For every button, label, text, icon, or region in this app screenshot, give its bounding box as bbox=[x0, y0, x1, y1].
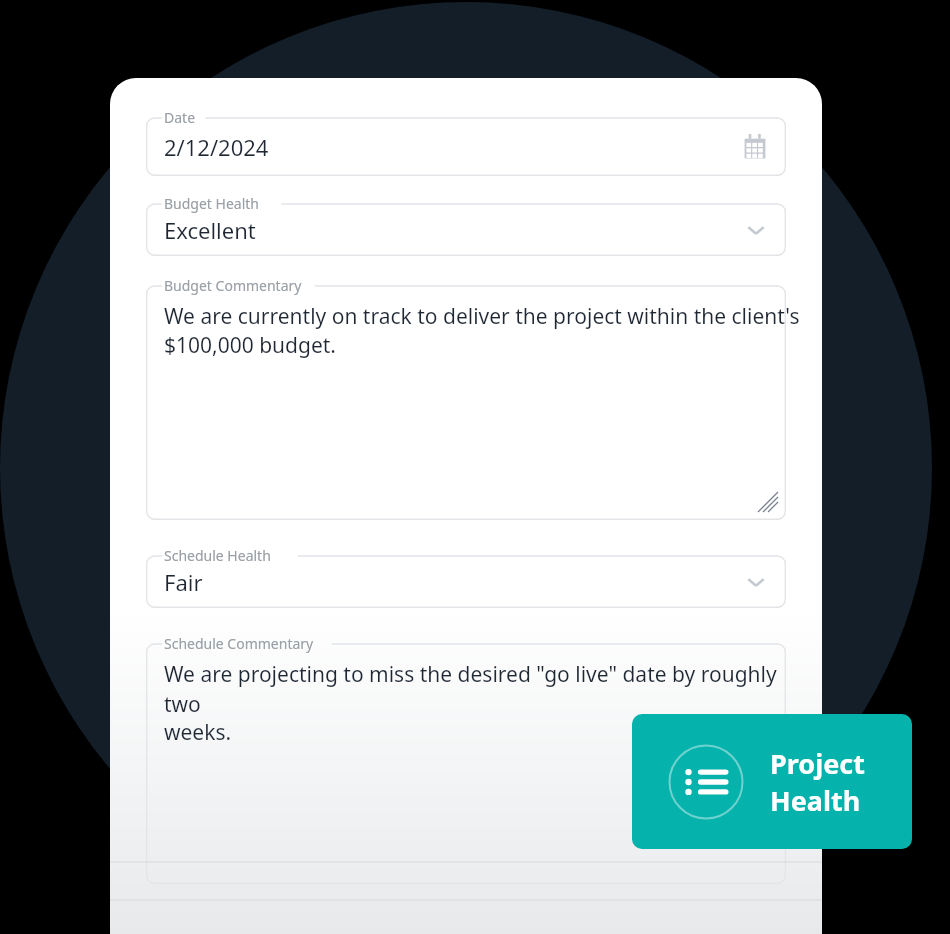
staticText: Excellent bbox=[164, 215, 256, 245]
staticText: Project bbox=[770, 745, 865, 782]
staticText: Budget Commentary bbox=[164, 276, 302, 295]
other: Open dropdown bbox=[744, 218, 768, 242]
other: Open dropdown bbox=[744, 570, 768, 594]
button[interactable]: Budget Commentary bbox=[146, 276, 786, 520]
staticText: Schedule Commentary bbox=[164, 634, 314, 653]
button[interactable]: Schedule Commentary bbox=[146, 634, 786, 884]
staticText: Schedule Health bbox=[164, 546, 271, 565]
staticText: Fair bbox=[164, 567, 203, 597]
staticText: 2/12/2024 bbox=[164, 132, 269, 162]
other: Pick date bbox=[742, 134, 768, 160]
other: Project Health list bbox=[668, 744, 744, 820]
staticText: weeks. bbox=[164, 718, 232, 747]
staticText: Health bbox=[770, 782, 861, 819]
staticText: Budget Health bbox=[164, 194, 260, 213]
button[interactable]: Date bbox=[146, 108, 786, 176]
staticText: We are currently on track to deliver the… bbox=[164, 302, 800, 331]
staticText: We are projecting to miss the desired "g… bbox=[164, 660, 804, 718]
staticText: $100,000 budget. bbox=[164, 331, 336, 360]
button[interactable]: Project Health list bbox=[632, 714, 912, 849]
button[interactable]: Budget Health bbox=[146, 194, 786, 256]
staticText: Date bbox=[164, 108, 196, 127]
button[interactable]: Schedule Health bbox=[146, 546, 786, 608]
